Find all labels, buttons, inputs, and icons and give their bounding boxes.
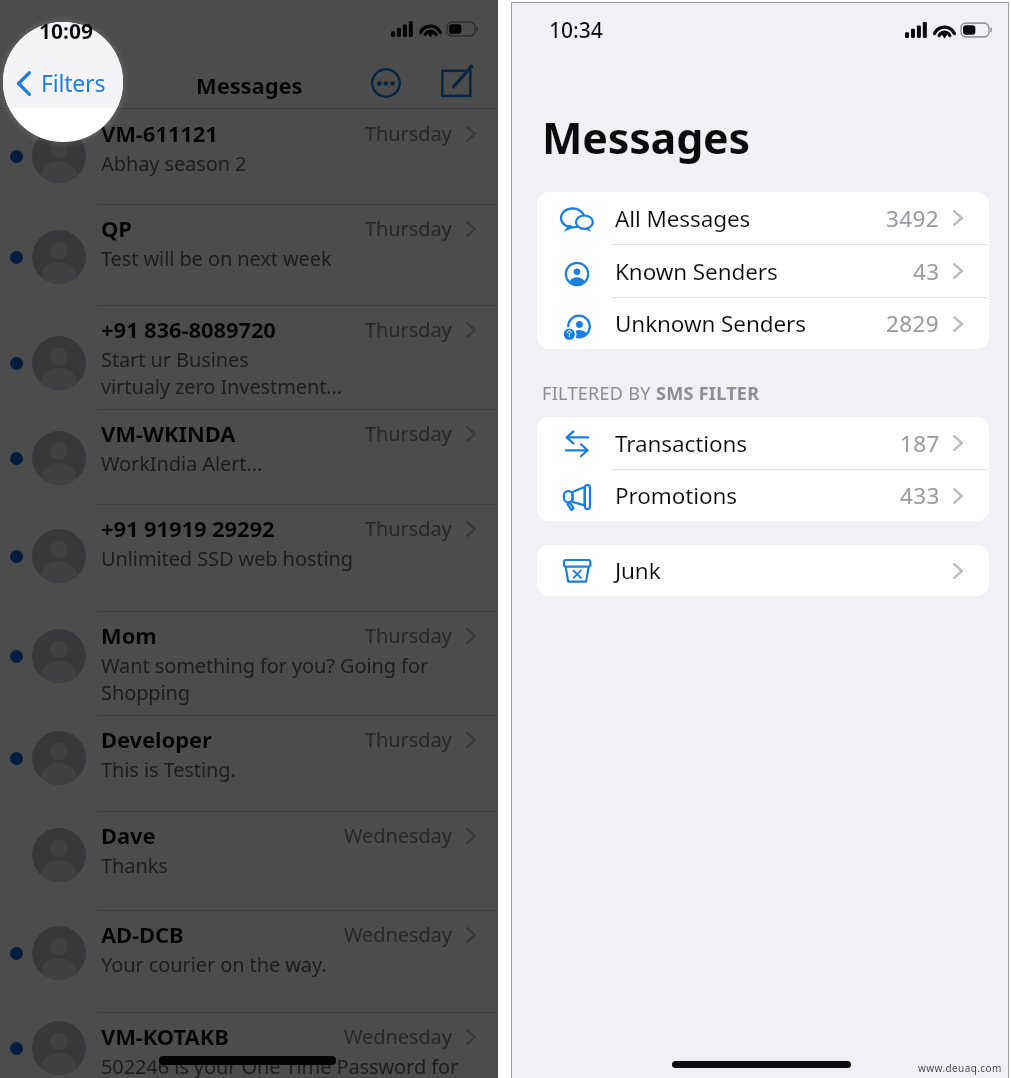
staticText: Thursday <box>365 515 452 542</box>
staticText: 187 <box>900 428 940 459</box>
button[interactable]: +91 91919 29292 <box>0 504 498 611</box>
staticText: Start ur Busines <box>101 346 249 373</box>
staticText: 43 <box>913 256 940 287</box>
button[interactable]: Promotions <box>537 470 989 521</box>
button[interactable]: Developer <box>0 715 498 811</box>
staticText: FILTERED BY <box>542 381 656 406</box>
staticText: 10:09 <box>39 17 93 46</box>
staticText: This is Testing. <box>101 756 236 783</box>
staticText: WorkIndia Alert... <box>101 450 263 477</box>
button[interactable]: Dave <box>0 811 498 910</box>
staticText: Messages <box>196 70 303 100</box>
staticText: Want something for you? Going for <box>101 652 429 679</box>
staticText: VM-611121 <box>101 118 218 148</box>
staticText: All Messages <box>615 203 751 234</box>
staticText: www.deuaq.com <box>918 1061 1002 1075</box>
staticText: VM-WKINDA <box>101 418 236 448</box>
staticText: 10:34 <box>549 16 603 45</box>
staticText: Thursday <box>365 120 452 147</box>
button[interactable]: VM-KOTAKB <box>0 1012 498 1078</box>
staticText: Wednesday <box>344 1023 452 1050</box>
button[interactable]: AD-DCB <box>0 910 498 1012</box>
staticText: Test will be on next week <box>101 245 332 272</box>
staticText: Transactions <box>615 428 747 459</box>
staticText: Thursday <box>365 316 452 343</box>
staticText: Mom <box>101 620 157 650</box>
staticText: Thursday <box>365 420 452 447</box>
staticText: Junk <box>615 555 661 586</box>
staticText: Developer <box>101 724 212 754</box>
staticText: Thursday <box>365 215 452 242</box>
button[interactable]: VM-WKINDA <box>0 409 498 504</box>
staticText: 433 <box>900 480 940 511</box>
staticText: Wednesday <box>344 921 452 948</box>
staticText: Thursday <box>365 726 452 753</box>
staticText: AD-DCB <box>101 919 184 949</box>
staticText: Thanks <box>101 852 168 879</box>
button[interactable]: More options <box>371 68 401 98</box>
staticText: Shopping <box>101 679 191 706</box>
staticText: Promotions <box>615 480 737 511</box>
staticText: +91 836-8089720 <box>101 314 276 344</box>
button[interactable]: Known Senders <box>537 245 989 297</box>
staticText: Thursday <box>365 622 452 649</box>
staticText: Abhay season 2 <box>101 150 247 177</box>
staticText: 10:09 <box>39 17 93 46</box>
staticText: Filters <box>36 71 101 96</box>
staticText: 502246 is your One Time Password for <box>101 1053 459 1078</box>
button[interactable]: Transactions <box>537 417 989 469</box>
staticText: virtualy zero Investment... <box>101 373 343 400</box>
staticText: Unlimited SSD web hosting <box>101 545 353 572</box>
button[interactable]: VM-611121 <box>0 109 498 204</box>
staticText: +91 91919 29292 <box>101 513 275 543</box>
staticText: 3492 <box>886 203 940 234</box>
button[interactable]: Junk <box>537 545 989 596</box>
staticText: Filters <box>41 67 106 98</box>
button[interactable]: Unknown Senders <box>537 298 989 349</box>
staticText: SMS FILTER <box>656 381 760 406</box>
button[interactable]: Mom <box>0 611 498 715</box>
staticText: Wednesday <box>344 822 452 849</box>
staticText: Dave <box>101 820 156 850</box>
staticText: QP <box>101 213 132 243</box>
button[interactable]: Back to Filters <box>14 63 110 101</box>
button[interactable]: QP <box>0 204 498 305</box>
button[interactable]: Filters <box>16 71 101 96</box>
staticText: 2829 <box>886 308 940 339</box>
button[interactable]: +91 836-8089720 <box>0 305 498 409</box>
staticText: VM-KOTAKB <box>101 1021 229 1051</box>
staticText: Messages <box>542 108 750 167</box>
staticText: Unknown Senders <box>615 308 806 339</box>
staticText: Your courier on the way. <box>101 951 327 978</box>
button[interactable]: All Messages <box>537 192 989 244</box>
button[interactable]: New message <box>441 64 473 96</box>
staticText: Known Senders <box>615 256 778 287</box>
